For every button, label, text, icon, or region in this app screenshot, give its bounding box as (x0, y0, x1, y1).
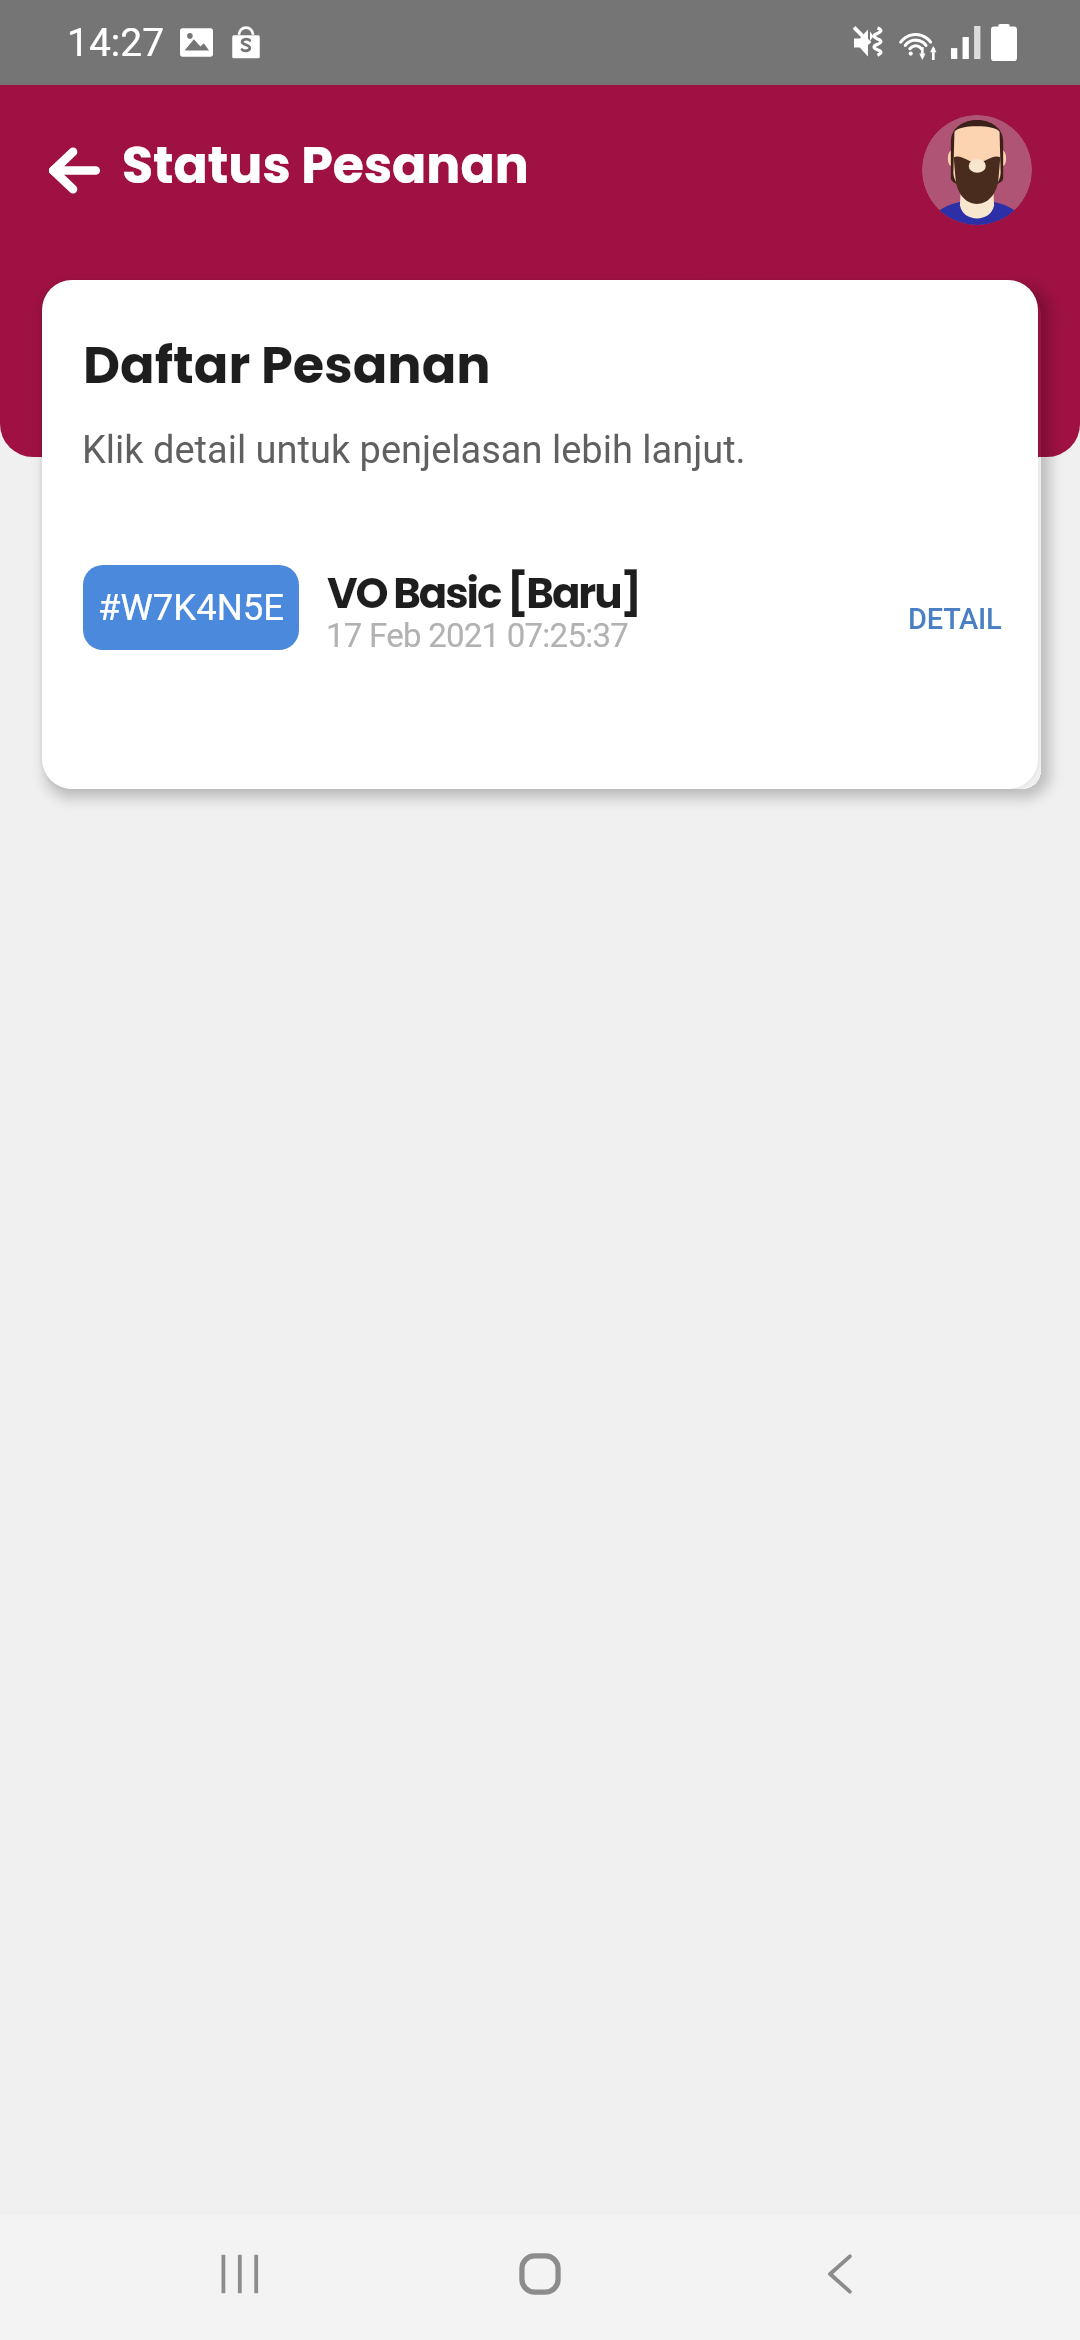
staticText: 14:27 (67, 20, 165, 66)
button[interactable]: Back (29, 125, 119, 215)
staticText: DETAIL (908, 602, 1002, 636)
staticText: #W7K4N5E (98, 586, 285, 629)
button[interactable]: Back (780, 2214, 900, 2334)
button[interactable]: Recent apps (180, 2214, 300, 2334)
button[interactable]: Profile (922, 115, 1032, 225)
staticText: 17 Feb 2021 07:25:37 (326, 616, 629, 655)
button[interactable] (42, 552, 1038, 664)
staticText: Daftar Pesanan (83, 329, 491, 400)
staticText: Status Pesanan (122, 130, 529, 201)
button[interactable]: #W7K4N5E (83, 565, 299, 650)
button[interactable]: DETAIL (886, 584, 1024, 654)
staticText: VO Basic [Baru] (327, 564, 640, 623)
staticText: Klik detail untuk penjelasan lebih lanju… (82, 428, 746, 473)
button[interactable]: Home (480, 2214, 600, 2334)
